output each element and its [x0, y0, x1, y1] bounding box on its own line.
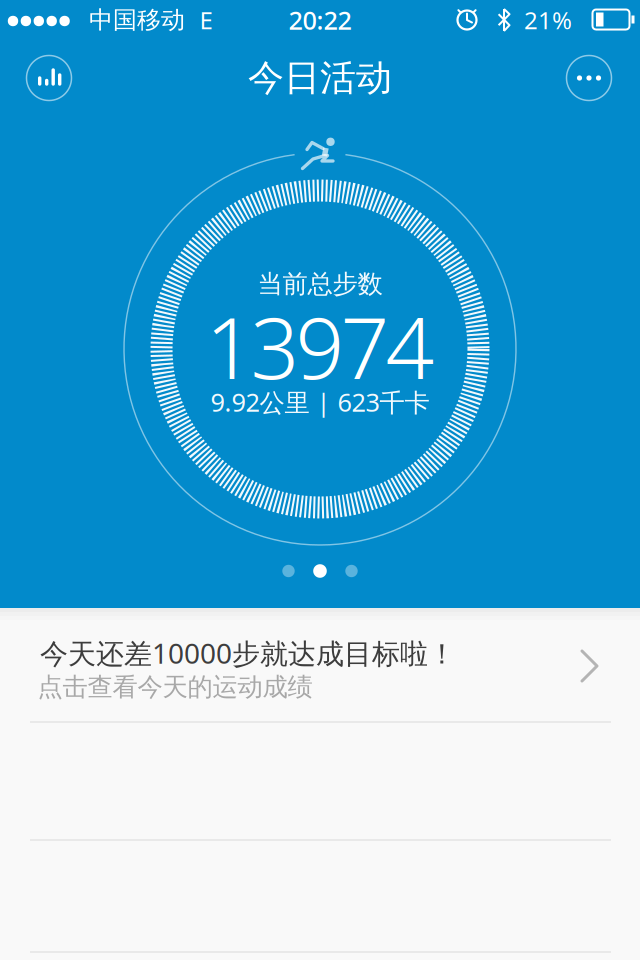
staticText: 当前总步数 — [257, 268, 382, 299]
staticText: 今天还差10000步就达成目标啦！ — [40, 634, 456, 672]
button[interactable] — [26, 55, 71, 100]
staticText: E — [199, 4, 212, 36]
staticText: 9.92公里 | 623千卡 — [210, 385, 429, 419]
staticText: 21% — [524, 4, 572, 36]
staticText: 今日活动 — [248, 56, 392, 100]
staticText: 13974 — [205, 289, 434, 403]
staticText: 中国移动 — [89, 5, 185, 35]
staticText: 20:22 — [288, 3, 351, 37]
button[interactable] — [566, 55, 611, 100]
staticText: 点击查看今天的运动成绩 — [37, 671, 312, 702]
button[interactable]: 今天还差10000步就达成目标啦！ — [0, 620, 640, 722]
